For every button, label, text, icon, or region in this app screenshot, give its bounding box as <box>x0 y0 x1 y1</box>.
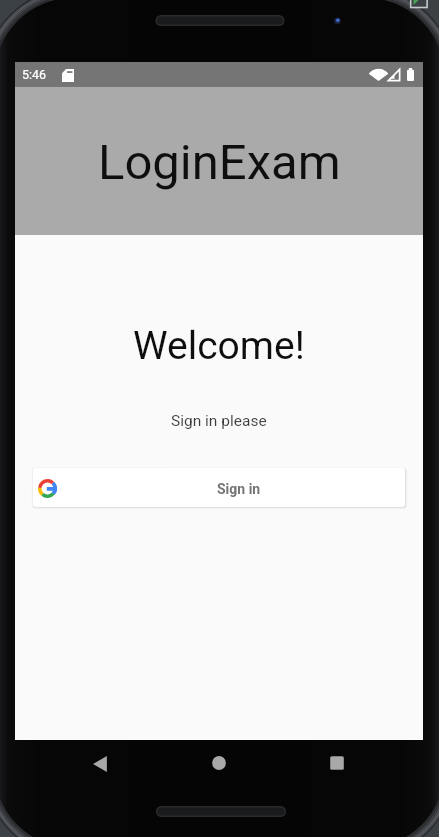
staticText: Sign in <box>217 481 261 497</box>
staticText: LoginExam <box>98 134 341 191</box>
button[interactable]: Back <box>82 746 118 782</box>
staticText: Sign in please <box>171 412 267 430</box>
staticText: 5:46 <box>22 67 47 82</box>
staticText: Welcome! <box>133 323 305 369</box>
button[interactable]: Recent apps <box>319 745 355 781</box>
button[interactable]: Home <box>201 745 237 781</box>
button[interactable]: Sign in <box>33 468 405 507</box>
